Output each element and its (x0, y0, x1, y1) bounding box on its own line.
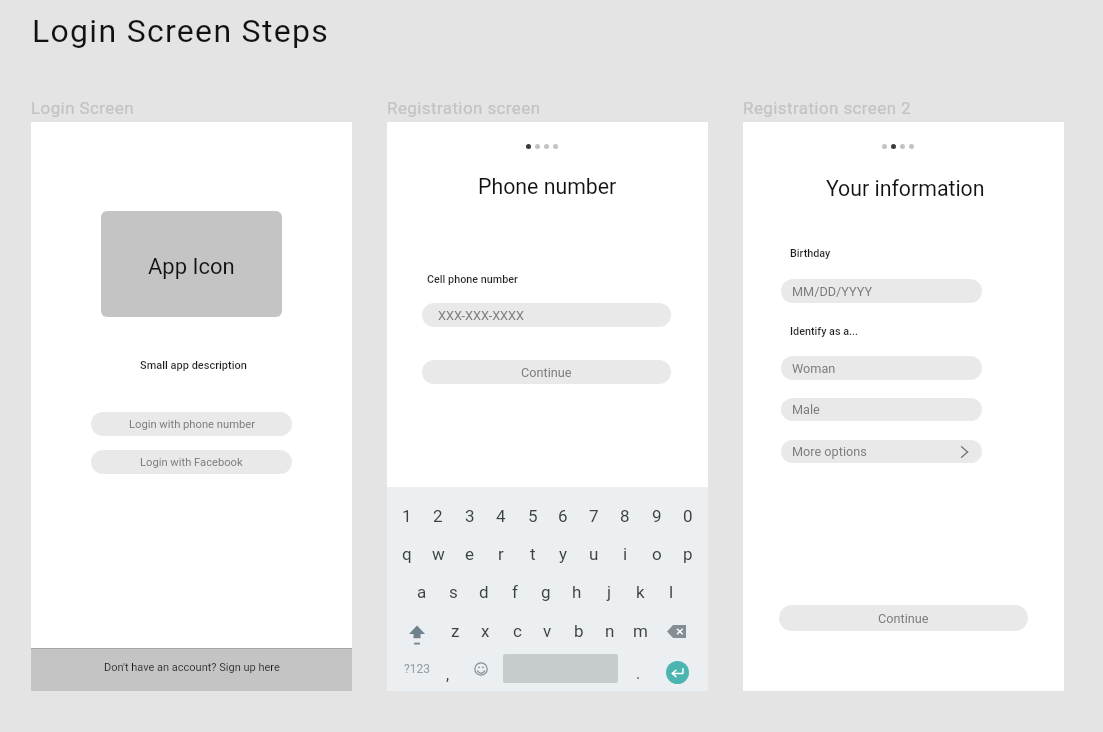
button[interactable]: MM/DD/YYYY (781, 279, 982, 303)
staticText: 0 (683, 506, 693, 526)
button[interactable]: , (436, 656, 460, 682)
button[interactable]: u (581, 539, 607, 569)
staticText: r (498, 544, 504, 564)
button[interactable]: ?123 (401, 656, 433, 682)
button[interactable]: n (597, 616, 623, 646)
button[interactable]: Login with Facebook (91, 450, 292, 474)
button[interactable]: Don't have an account? Sign up here (31, 648, 352, 691)
staticText: MM/DD/YYYY (792, 284, 873, 299)
staticText: Cell phone number (427, 273, 518, 286)
button[interactable]: 4 (488, 501, 514, 531)
button[interactable]: b (566, 616, 592, 646)
staticText: x (481, 621, 490, 641)
button[interactable]: f (502, 577, 528, 607)
button[interactable]: Enter (666, 661, 689, 684)
button[interactable]: w (425, 539, 451, 569)
button[interactable]: m (627, 616, 653, 646)
staticText: 4 (496, 506, 506, 526)
button[interactable]: h (564, 577, 590, 607)
button[interactable]: XXX-XXX-XXXX (422, 303, 671, 327)
staticText: 7 (589, 506, 599, 526)
button[interactable]: . (626, 656, 650, 682)
button[interactable]: s (440, 577, 466, 607)
button[interactable]: 8 (612, 501, 638, 531)
button[interactable]: Male (781, 398, 982, 421)
button[interactable]: d (471, 577, 497, 607)
staticText: Registration screen 2 (743, 98, 912, 118)
staticText: App Icon (148, 254, 235, 280)
staticText: n (605, 621, 615, 641)
staticText: b (574, 621, 584, 641)
button[interactable]: c (504, 616, 530, 646)
staticText: XXX-XXX-XXXX (438, 308, 524, 323)
button[interactable]: Emoji (469, 656, 493, 682)
staticText: i (623, 544, 628, 564)
button[interactable]: p (675, 539, 701, 569)
staticText: Identify as a... (790, 325, 859, 338)
staticText: f (512, 582, 518, 602)
staticText: Registration screen (387, 98, 541, 118)
button[interactable]: 5 (520, 501, 546, 531)
staticText: k (636, 582, 645, 602)
button[interactable]: v (534, 616, 560, 646)
staticText: 3 (465, 506, 475, 526)
staticText: ?123 (404, 662, 430, 676)
button[interactable]: o (644, 539, 670, 569)
button[interactable]: i (612, 539, 638, 569)
button[interactable]: y (550, 539, 576, 569)
staticText: Phone number (478, 174, 617, 199)
staticText: c (513, 621, 522, 641)
staticText: 6 (558, 506, 568, 526)
staticText: a (417, 582, 427, 602)
staticText: Your information (826, 176, 985, 201)
button[interactable]: t (520, 539, 546, 569)
button[interactable]: 3 (457, 501, 483, 531)
staticText: z (451, 621, 460, 641)
staticText: Login Screen (31, 98, 134, 118)
button[interactable]: q (394, 539, 420, 569)
button[interactable]: r (488, 539, 514, 569)
staticText: Continue (521, 365, 572, 380)
button[interactable]: 7 (581, 501, 607, 531)
staticText: v (543, 621, 552, 641)
staticText: m (633, 621, 648, 641)
button[interactable]: Shift (404, 620, 430, 650)
button[interactable]: a (409, 577, 435, 607)
staticText: Don't have an account? Sign up here (104, 661, 280, 674)
button[interactable]: j (596, 577, 622, 607)
staticText: 9 (652, 506, 662, 526)
staticText: l (669, 582, 674, 602)
button[interactable]: 1 (394, 501, 420, 531)
staticText: . (636, 664, 641, 683)
button[interactable]: e (457, 539, 483, 569)
button[interactable]: Continue (779, 605, 1028, 631)
staticText: w (432, 544, 445, 564)
staticText: Login with Facebook (140, 456, 243, 469)
staticText: Male (792, 402, 820, 417)
staticText: Continue (878, 611, 929, 626)
staticText: y (559, 544, 568, 564)
button[interactable]: x (472, 616, 498, 646)
button[interactable]: 6 (550, 501, 576, 531)
staticText: Woman (792, 361, 836, 376)
staticText: h (572, 582, 582, 602)
staticText: q (402, 544, 412, 564)
button[interactable]: Woman (781, 356, 982, 380)
button[interactable]: 0 (675, 501, 701, 531)
staticText: Login with phone number (129, 418, 255, 431)
button[interactable]: k (627, 577, 653, 607)
staticText: o (652, 544, 662, 564)
staticText: More options (792, 444, 867, 459)
button[interactable]: 2 (425, 501, 451, 531)
button[interactable]: Login with phone number (91, 412, 292, 436)
button[interactable]: Continue (422, 360, 671, 384)
staticText: Small app description (140, 359, 247, 372)
button[interactable]: l (658, 577, 684, 607)
button[interactable]: 9 (644, 501, 670, 531)
button[interactable]: g (533, 577, 559, 607)
button[interactable]: Backspace (663, 616, 689, 646)
button[interactable]: z (442, 616, 468, 646)
staticText: s (449, 582, 458, 602)
button[interactable]: More options (781, 440, 982, 463)
